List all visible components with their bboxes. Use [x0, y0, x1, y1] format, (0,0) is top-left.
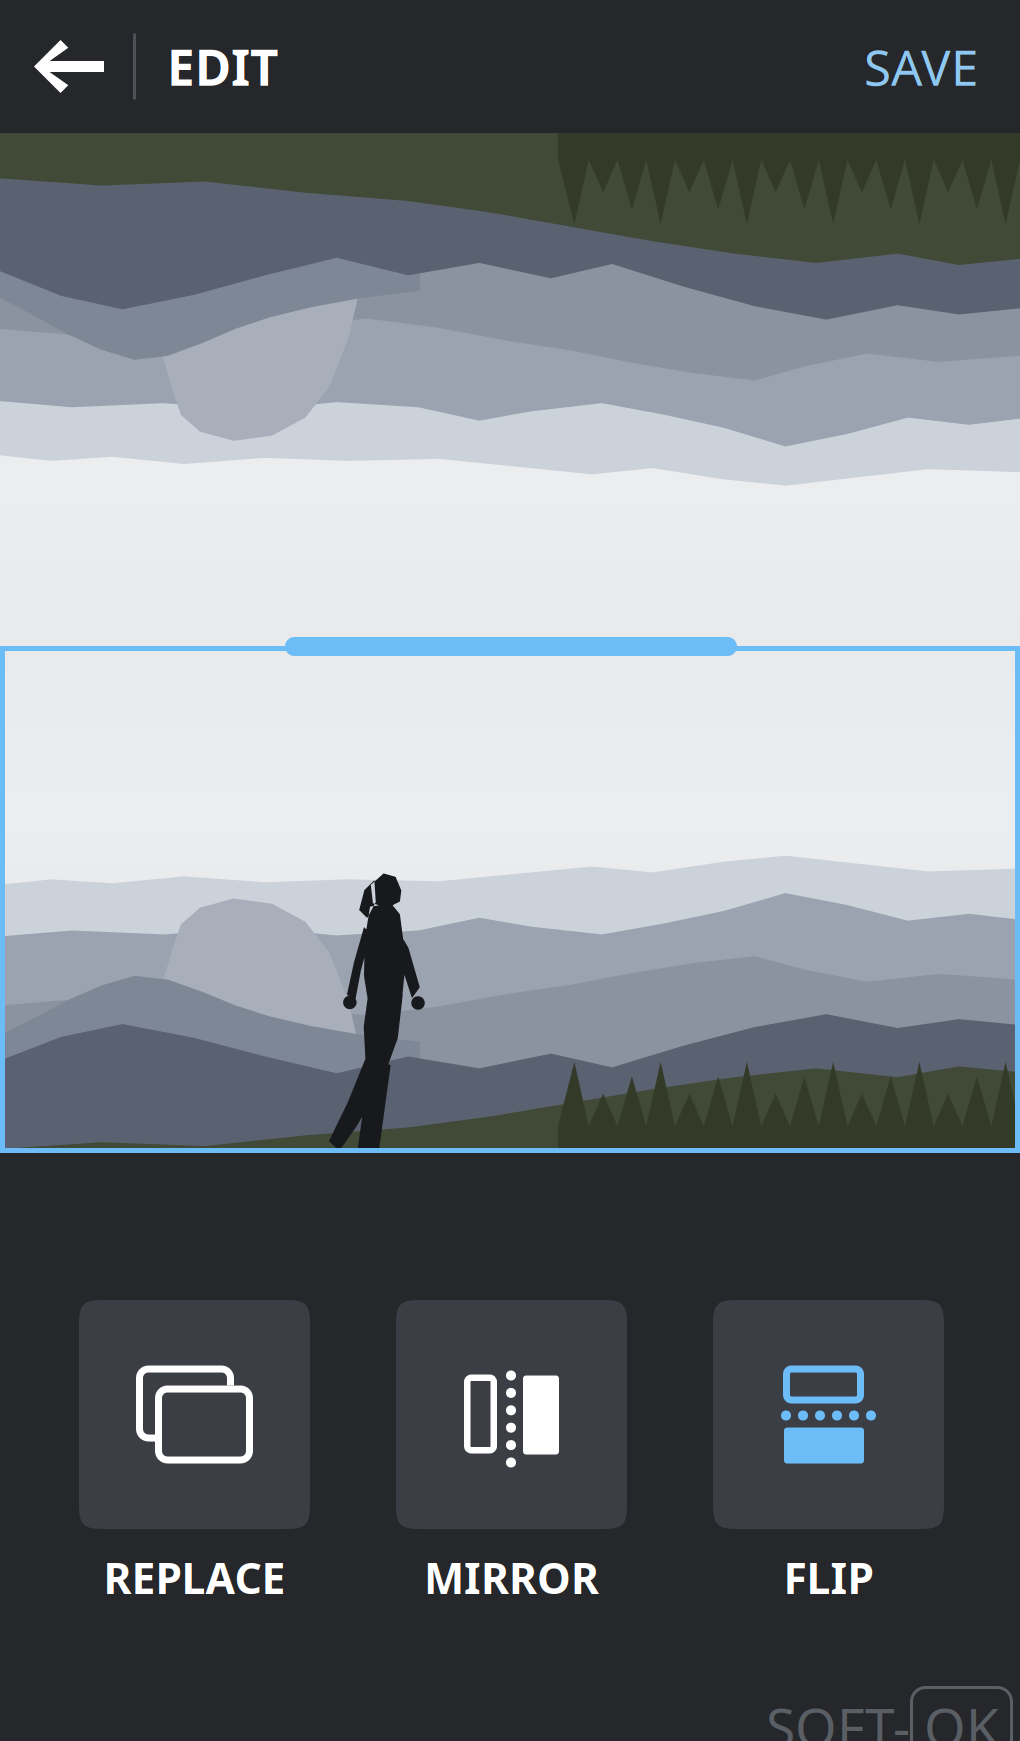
staticText: SOFT-: [766, 1691, 910, 1741]
staticText: FLIP: [783, 1549, 873, 1606]
button[interactable]: SAVE: [864, 0, 1020, 133]
staticText: EDIT: [167, 34, 278, 99]
button[interactable]: REPLACE: [79, 1300, 310, 1606]
staticText: MIRROR: [424, 1549, 599, 1606]
button[interactable]: Back: [0, 0, 133, 133]
button[interactable]: FLIP: [713, 1300, 944, 1606]
button[interactable]: MIRROR: [396, 1300, 627, 1606]
staticText: REPLACE: [103, 1549, 285, 1606]
staticText: SAVE: [864, 34, 978, 99]
staticText: OK: [924, 1691, 999, 1741]
